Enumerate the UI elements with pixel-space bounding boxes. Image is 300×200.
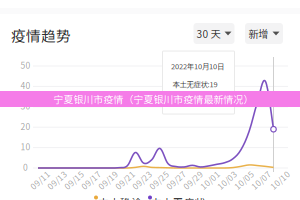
staticText: 09/27: [164, 174, 187, 186]
staticText: 09/29: [181, 174, 204, 186]
staticText: 本土确诊: [98, 194, 142, 200]
staticText: 10/01: [198, 174, 221, 186]
staticText: 09/11: [28, 174, 51, 186]
staticText: 宁夏银川市疫情（宁夏银川市疫情最新情况）: [53, 92, 253, 106]
staticText: 09/19: [96, 174, 119, 186]
staticText: 40: [20, 79, 30, 92]
staticText: 09/21: [113, 174, 136, 186]
staticText: 2022年10月10日: [171, 61, 224, 71]
staticText: 10/03: [215, 174, 238, 186]
staticText: 30 天: [196, 26, 220, 41]
staticText: 10: [20, 140, 30, 153]
staticText: 20: [20, 120, 30, 132]
staticText: 50: [20, 59, 30, 71]
staticText: 新增: [248, 26, 268, 41]
staticText: 本土无症状:19: [172, 79, 217, 89]
staticText: 09/15: [62, 174, 85, 186]
staticText: 10/07: [249, 174, 272, 186]
button[interactable]: 30 天: [193, 23, 234, 44]
staticText: 疫情趋势: [11, 24, 71, 46]
staticText: 09/13: [45, 174, 68, 186]
staticText: 09/17: [79, 174, 102, 186]
staticText: 10/05: [232, 174, 255, 186]
staticText: 本土无症状: [150, 194, 205, 200]
staticText: 09/23: [130, 174, 153, 186]
staticText: 30: [20, 100, 30, 112]
staticText: 10/10: [268, 174, 291, 186]
staticText: 0: [23, 161, 28, 173]
staticText: 09/25: [147, 174, 170, 186]
button[interactable]: 新增: [245, 23, 283, 44]
